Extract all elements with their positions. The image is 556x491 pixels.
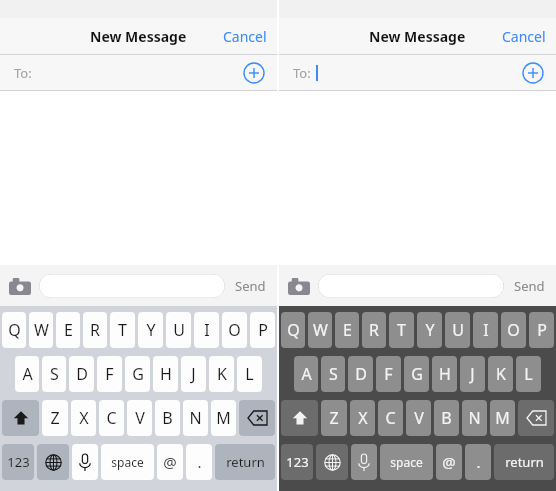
staticText: V	[135, 407, 145, 429]
button[interactable]: J	[181, 356, 206, 392]
button[interactable]: P	[529, 312, 554, 348]
button[interactable]: X	[350, 400, 375, 436]
button[interactable]: H	[432, 356, 457, 392]
button[interactable]: O	[222, 312, 247, 348]
button[interactable]: F	[97, 356, 122, 392]
button[interactable]: M	[211, 400, 236, 436]
button[interactable]: E	[56, 312, 80, 348]
button[interactable]: Y	[138, 312, 163, 348]
staticText: C	[106, 407, 117, 429]
button[interactable]: W	[29, 312, 53, 348]
staticText: G	[132, 363, 144, 385]
button[interactable]: A	[294, 356, 318, 392]
button[interactable]: Cancel	[492, 18, 556, 55]
button[interactable]: U	[166, 312, 191, 348]
button[interactable]: T	[389, 312, 414, 348]
button[interactable]: D	[69, 356, 94, 392]
button[interactable]: R	[83, 312, 107, 348]
button[interactable]	[318, 274, 504, 298]
button[interactable]: D	[348, 356, 373, 392]
button[interactable]: To:	[279, 55, 556, 91]
button[interactable]	[39, 274, 225, 298]
button[interactable]: B	[155, 400, 180, 436]
button[interactable]: N	[462, 400, 487, 436]
button[interactable]: .	[465, 444, 491, 480]
staticText: P	[258, 319, 268, 341]
staticText: L	[524, 363, 533, 385]
button[interactable]: T	[110, 312, 135, 348]
button[interactable]: To:	[0, 55, 277, 91]
staticText: New Message	[90, 27, 187, 46]
button[interactable]: F	[376, 356, 401, 392]
button[interactable]: L	[237, 356, 262, 392]
button[interactable]: N	[183, 400, 208, 436]
staticText: B	[162, 407, 173, 429]
button[interactable]: V	[406, 400, 431, 436]
button[interactable]: Add contact	[243, 62, 265, 84]
button[interactable]: H	[153, 356, 178, 392]
button[interactable]: M	[490, 400, 515, 436]
button[interactable]: 123	[2, 444, 34, 480]
button[interactable]: space	[101, 444, 154, 480]
button[interactable]: C	[99, 400, 124, 436]
button[interactable]: Delete	[518, 400, 554, 436]
button[interactable]: @	[436, 444, 462, 480]
button[interactable]: Q	[281, 312, 305, 348]
staticText: New Message	[369, 27, 466, 46]
button[interactable]: Change language	[316, 444, 348, 480]
button[interactable]: Y	[417, 312, 442, 348]
staticText: .	[476, 452, 481, 472]
button[interactable]: S	[42, 356, 66, 392]
button[interactable]: K	[209, 356, 234, 392]
button[interactable]: V	[127, 400, 152, 436]
staticText: return	[505, 453, 544, 471]
button[interactable]: Shift	[2, 400, 39, 436]
button[interactable]: Q	[2, 312, 26, 348]
button[interactable]: W	[308, 312, 332, 348]
button[interactable]: .	[186, 444, 212, 480]
button[interactable]: E	[335, 312, 359, 348]
button[interactable]: Dictation	[351, 444, 377, 480]
button[interactable]: return	[494, 444, 554, 480]
button[interactable]: Delete	[239, 400, 275, 436]
button[interactable]: R	[362, 312, 386, 348]
button[interactable]: Change language	[37, 444, 69, 480]
button[interactable]: S	[321, 356, 345, 392]
button[interactable]: O	[501, 312, 526, 348]
button[interactable]: 123	[281, 444, 313, 480]
button[interactable]: Send	[510, 277, 549, 295]
staticText: M	[216, 407, 231, 429]
button[interactable]: Send	[231, 277, 270, 295]
button[interactable]: K	[488, 356, 513, 392]
button[interactable]: Z	[321, 400, 347, 436]
staticText: M	[495, 407, 510, 429]
staticText: W	[313, 319, 328, 341]
button[interactable]: G	[404, 356, 429, 392]
button[interactable]: X	[71, 400, 96, 436]
button[interactable]: P	[250, 312, 275, 348]
button[interactable]: G	[125, 356, 150, 392]
button[interactable]: Z	[42, 400, 68, 436]
button[interactable]: Add contact	[522, 62, 544, 84]
button[interactable]: U	[445, 312, 470, 348]
staticText: F	[384, 363, 393, 385]
staticText: H	[439, 363, 451, 385]
button[interactable]: B	[434, 400, 459, 436]
button[interactable]: I	[194, 312, 219, 348]
button[interactable]: return	[215, 444, 275, 480]
button[interactable]: J	[460, 356, 485, 392]
button[interactable]: Camera	[7, 275, 33, 297]
button[interactable]: @	[157, 444, 183, 480]
button[interactable]: Dictation	[72, 444, 98, 480]
staticText: J	[470, 363, 475, 385]
button[interactable]: Cancel	[213, 18, 277, 55]
staticText: B	[441, 407, 452, 429]
button[interactable]: L	[516, 356, 541, 392]
button[interactable]: Camera	[286, 275, 312, 297]
button[interactable]: I	[473, 312, 498, 348]
button[interactable]: space	[380, 444, 433, 480]
staticText: F	[105, 363, 114, 385]
button[interactable]: Shift	[281, 400, 318, 436]
button[interactable]: A	[15, 356, 39, 392]
button[interactable]: C	[378, 400, 403, 436]
